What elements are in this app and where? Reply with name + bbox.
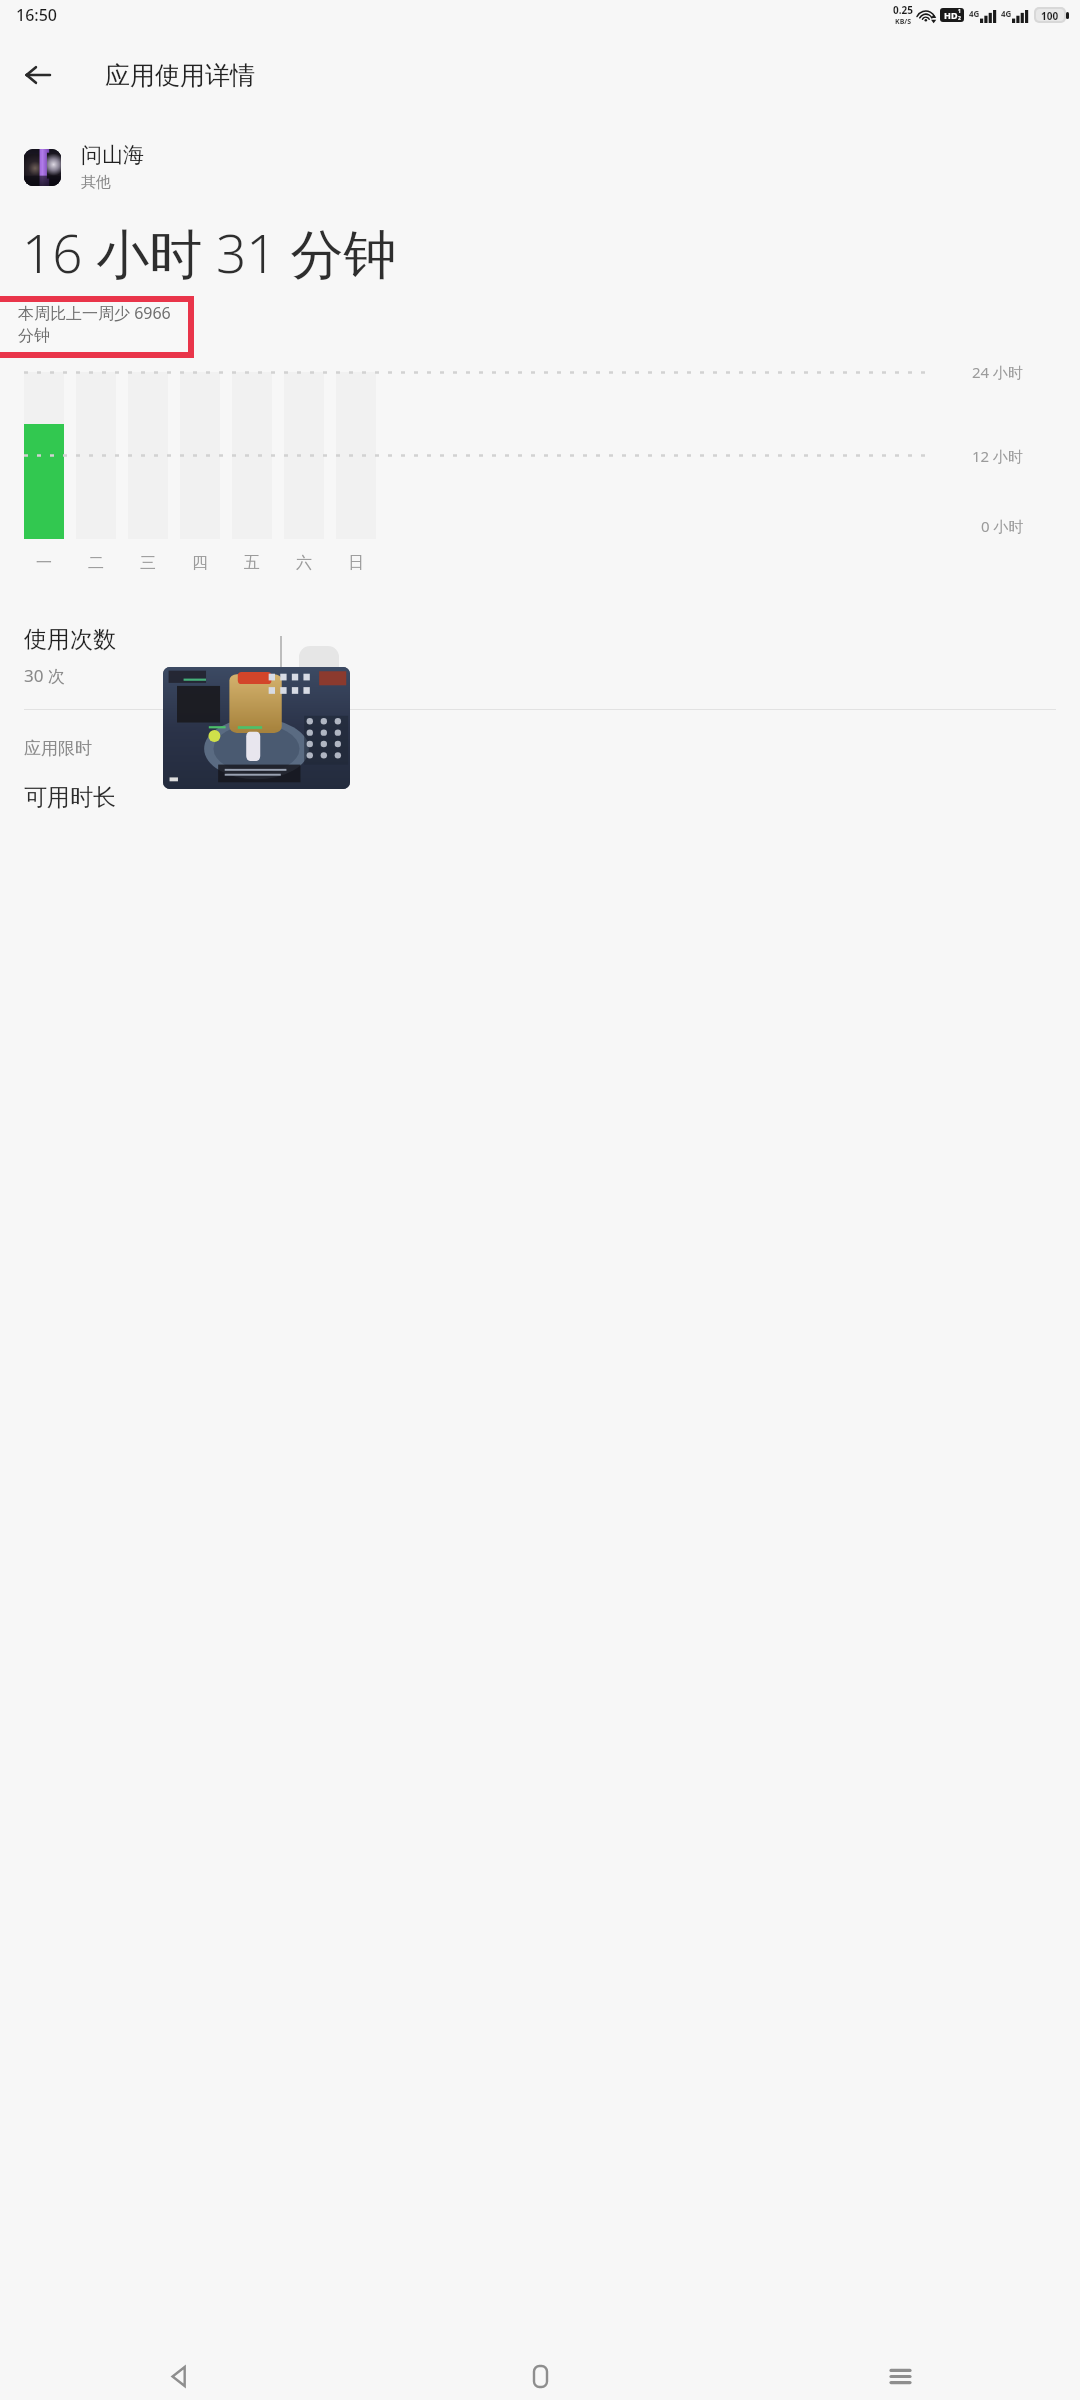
- staticText: 六: [296, 553, 312, 573]
- button[interactable]: Back: [0, 2352, 360, 2400]
- staticText: 四: [192, 553, 208, 573]
- button[interactable]: [24, 372, 64, 539]
- button[interactable]: 问山海: [24, 142, 1080, 192]
- staticText: 0 小时: [981, 516, 1024, 536]
- staticText: 二: [88, 553, 104, 573]
- staticText: 可用时长: [24, 783, 116, 812]
- staticText: KB/S: [895, 17, 912, 27]
- staticText: 其他: [81, 173, 111, 192]
- staticText: 2: [958, 15, 961, 22]
- staticText: 应用使用详情: [105, 60, 255, 91]
- staticText: 日: [348, 553, 364, 573]
- staticText: 16:50: [16, 4, 57, 26]
- staticText: 三: [140, 553, 156, 573]
- staticText: 一: [36, 553, 52, 573]
- staticText: 16 小时 31 分钟: [22, 216, 397, 288]
- staticText: 使用次数: [24, 625, 116, 654]
- staticText: 100: [1041, 9, 1059, 21]
- staticText: 30 次: [24, 664, 65, 687]
- staticText: 4G: [1001, 8, 1012, 19]
- staticText: 4G: [969, 8, 980, 19]
- staticText: 24 小时: [972, 362, 1024, 382]
- button[interactable]: Back: [10, 47, 66, 103]
- staticText: 本周比上一周少 6966 分钟: [18, 302, 188, 346]
- staticText: 问山海: [81, 142, 144, 168]
- button[interactable]: Recent apps: [720, 2352, 1080, 2400]
- staticText: 应用限时: [24, 738, 92, 759]
- staticText: HD: [944, 9, 958, 21]
- button[interactable]: Home: [360, 2352, 720, 2400]
- staticText: 五: [244, 553, 260, 573]
- staticText: 12 小时: [972, 446, 1024, 466]
- staticText: 1: [958, 8, 961, 15]
- button[interactable]: Floating game window: [163, 667, 350, 789]
- staticText: 0.25: [893, 3, 913, 17]
